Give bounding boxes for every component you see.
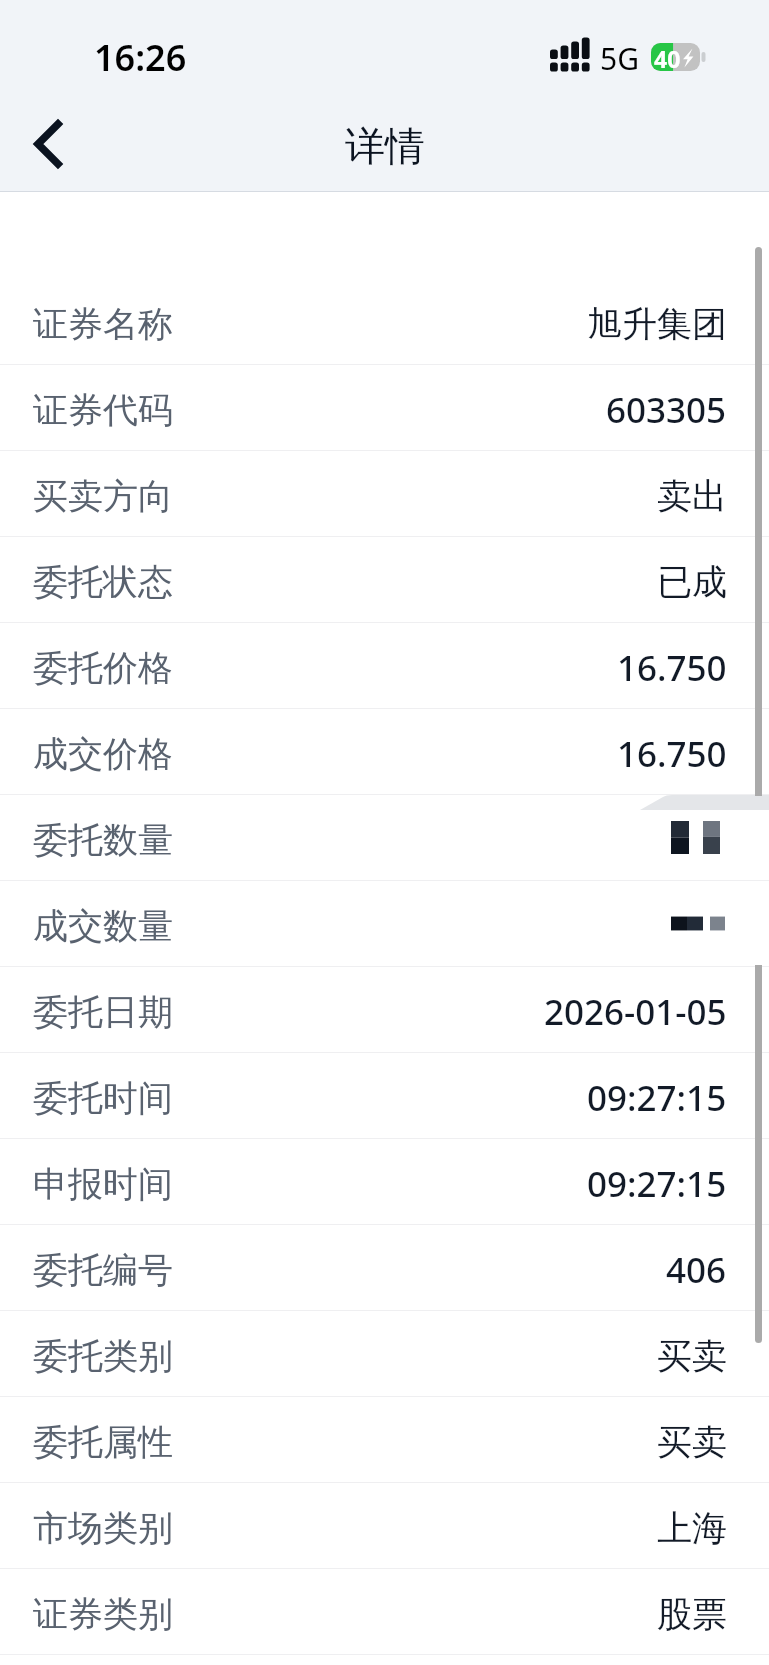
button[interactable]: 买卖方向 [0,451,769,536]
staticText: 5G [600,38,639,79]
staticText: 股票 [657,1592,727,1636]
staticText: 成交价格 [33,732,173,776]
button[interactable]: 委托价格 [0,623,769,708]
button[interactable]: 委托时间 [0,1053,769,1138]
staticText: 证券代码 [33,388,173,432]
staticText: 委托编号 [33,1248,173,1292]
button[interactable]: 委托日期 [0,967,769,1052]
staticText: 申报时间 [33,1162,173,1206]
staticText: 上海 [657,1506,727,1550]
staticText: 卖出 [657,474,727,518]
button[interactable]: 成交数量 [0,881,769,966]
button[interactable]: 证券名称 [0,279,769,364]
staticText: 16:26 [94,33,187,82]
button[interactable]: 委托数量 [0,795,769,880]
staticText: 证券名称 [33,302,173,346]
button[interactable]: 成交价格 [0,709,769,794]
staticText: 证券类别 [33,1592,173,1636]
staticText: 委托时间 [33,1076,173,1120]
staticText: 603305 [606,386,727,434]
staticText: 委托数量 [33,818,173,862]
staticText: 买卖 [657,1334,727,1378]
button[interactable]: 委托状态 [0,537,769,622]
staticText: 委托价格 [33,646,173,690]
button[interactable]: 市场类别 [0,1483,769,1568]
staticText: 市场类别 [33,1506,173,1550]
staticText: 详情 [345,121,425,171]
button[interactable]: 委托编号 [0,1225,769,1310]
button[interactable]: 申报时间 [0,1139,769,1224]
staticText: 委托状态 [33,560,173,604]
staticText: 买卖 [657,1420,727,1464]
staticText: 成交数量 [33,904,173,948]
button[interactable]: 证券类别 [0,1569,769,1654]
button[interactable]: 返回 [8,104,88,184]
staticText: 16.750 [617,644,727,692]
staticText: 买卖方向 [33,474,173,518]
staticText: 已成 [657,560,727,604]
staticText: 16.750 [617,730,727,778]
staticText: 09:27:15 [587,1074,727,1122]
staticText: 委托类别 [33,1334,173,1378]
staticText: 40 [654,43,681,71]
staticText: 09:27:15 [587,1160,727,1208]
staticText: 旭升集团 [587,302,727,346]
button[interactable]: 证券代码 [0,365,769,450]
staticText: 委托属性 [33,1420,173,1464]
staticText: 委托日期 [33,990,173,1034]
staticText: 2026-01-05 [544,988,727,1036]
button[interactable]: 委托属性 [0,1397,769,1482]
button[interactable]: 委托类别 [0,1311,769,1396]
staticText: 406 [666,1246,727,1294]
